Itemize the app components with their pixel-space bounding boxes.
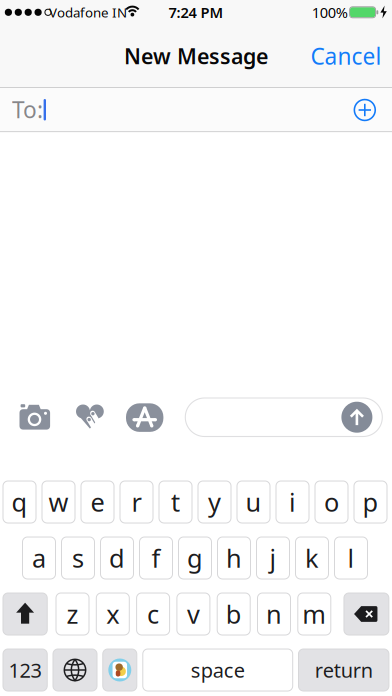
staticText: n [266, 597, 282, 631]
staticText: v [187, 597, 200, 631]
button[interactable]: Stickers [102, 648, 137, 691]
button[interactable]: t [158, 480, 192, 523]
button[interactable]: r [119, 480, 153, 523]
button[interactable]: Cancel [300, 36, 392, 76]
staticText: 123 [9, 657, 42, 683]
staticText: k [305, 541, 319, 575]
staticText: x [106, 597, 119, 631]
staticText: o [324, 485, 339, 519]
button[interactable]: w [41, 480, 75, 523]
staticText: h [226, 541, 242, 575]
staticText: return [315, 657, 373, 683]
button[interactable]: e [80, 480, 114, 523]
button[interactable]: Send [341, 402, 372, 433]
button[interactable]: g [178, 536, 212, 579]
button[interactable]: k [295, 536, 329, 579]
staticText: i [289, 485, 296, 519]
staticText: g [187, 541, 203, 575]
button[interactable]: 123 [2, 648, 48, 691]
button[interactable]: z [55, 592, 89, 635]
staticText: f [151, 541, 160, 575]
staticText: b [226, 597, 242, 631]
button[interactable]: j [256, 536, 290, 579]
button[interactable]: return [298, 648, 389, 691]
button[interactable]: App Store [126, 403, 163, 432]
button[interactable]: a [22, 536, 56, 579]
staticText: a [32, 541, 46, 575]
button[interactable]: d [100, 536, 134, 579]
button[interactable]: h [217, 536, 251, 579]
button[interactable]: n [257, 592, 291, 635]
button[interactable]: Add Contact [349, 94, 381, 126]
staticText: 100% [312, 3, 348, 22]
button[interactable]: Next Keyboard [52, 648, 97, 691]
button[interactable]: Delete [343, 592, 389, 635]
button[interactable]: i [275, 480, 309, 523]
staticText: j [269, 541, 276, 575]
button[interactable]: v [176, 592, 210, 635]
staticText: u [245, 485, 261, 519]
staticText: y [208, 485, 221, 519]
button[interactable]: u [236, 480, 270, 523]
button[interactable]: f [139, 536, 173, 579]
button[interactable]: b [217, 592, 251, 635]
staticText: e [90, 485, 104, 519]
staticText: Cancel [310, 41, 381, 71]
staticText: z [66, 597, 78, 631]
staticText: l [347, 541, 354, 575]
staticText: r [131, 485, 141, 519]
staticText: To: [12, 94, 43, 124]
staticText: New Message [124, 42, 268, 70]
button[interactable]: l [334, 536, 368, 579]
button[interactable]: Digital Touch [76, 404, 104, 430]
staticText: Vodafone IN [49, 3, 127, 21]
button[interactable]: q [2, 480, 36, 523]
button[interactable]: Camera [19, 404, 50, 430]
staticText: 7:24 PM [168, 3, 223, 22]
button[interactable]: space [142, 648, 293, 691]
button[interactable]: o [314, 480, 348, 523]
button[interactable]: m [297, 592, 331, 635]
staticText: t [171, 485, 180, 519]
staticText: c [147, 597, 159, 631]
staticText: w [48, 485, 68, 519]
button[interactable]: x [96, 592, 130, 635]
staticText: d [109, 541, 125, 575]
button[interactable]: s [61, 536, 95, 579]
staticText: p [362, 485, 378, 519]
button[interactable]: p [353, 480, 387, 523]
staticText: q [11, 485, 27, 519]
button[interactable]: Shift [2, 592, 48, 635]
staticText: s [72, 541, 84, 575]
button[interactable]: y [197, 480, 231, 523]
staticText: space [191, 657, 245, 683]
button[interactable]: c [136, 592, 170, 635]
staticText: m [302, 597, 326, 631]
